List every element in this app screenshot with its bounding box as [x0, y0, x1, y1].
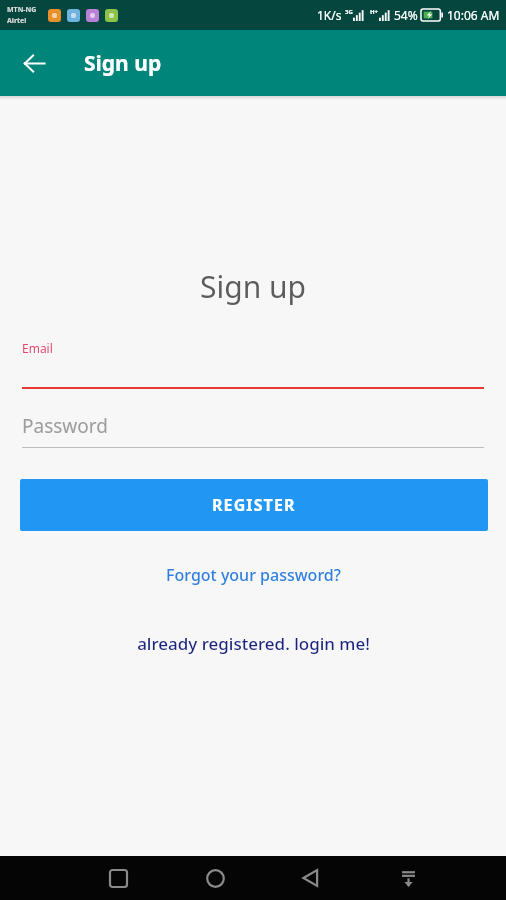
staticText: 10:06 AM	[447, 7, 500, 23]
button[interactable]: already registered. login me!	[0, 626, 506, 661]
staticText: 1K/s	[317, 7, 342, 23]
staticText: REGISTER	[212, 494, 296, 516]
staticText: Sign up	[0, 266, 506, 307]
staticText: Email	[22, 340, 53, 356]
button[interactable]: Back	[12, 41, 56, 85]
button[interactable]: Back	[285, 856, 337, 900]
staticText: Forgot your password?	[166, 564, 341, 586]
staticText: Password	[22, 413, 108, 439]
button[interactable]: Home	[189, 856, 241, 900]
staticText: Airtel	[7, 16, 27, 26]
staticText: Sign up	[84, 49, 162, 78]
button[interactable]: Recents	[92, 856, 144, 900]
button[interactable]: Email	[22, 340, 484, 389]
button[interactable]: Hide keyboard	[382, 856, 434, 900]
button[interactable]: Password	[22, 413, 484, 448]
staticText: MTN-NG	[7, 5, 37, 15]
staticText: 3G	[345, 8, 353, 16]
button[interactable]: REGISTER	[20, 479, 488, 531]
button[interactable]: Forgot your password?	[0, 558, 506, 592]
staticText: already registered. login me!	[137, 632, 370, 655]
staticText: 54%	[394, 7, 418, 23]
staticText: H+	[370, 8, 379, 16]
